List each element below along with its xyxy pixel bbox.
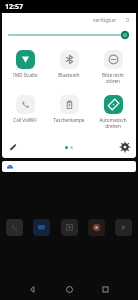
- staticText: verfügbar: [93, 17, 117, 24]
- button[interactable]: App: [33, 219, 50, 236]
- staticText: Bitte nicht stören: [92, 72, 134, 84]
- staticText: 0: [126, 17, 129, 24]
- button[interactable]: Bearbeiten: [7, 141, 19, 153]
- staticText: 1MD Studio: [4, 72, 46, 78]
- button[interactable]: App: [6, 219, 23, 236]
- button[interactable]: App: [88, 219, 105, 236]
- staticText: Call VoWiFi: [4, 117, 46, 123]
- button[interactable]: 1MD Studio: [4, 49, 46, 79]
- staticText: Taschenlampe: [48, 117, 90, 123]
- button[interactable]: Übersicht: [101, 285, 110, 294]
- button[interactable]: Call VoWiFi: [4, 94, 46, 124]
- staticText: 12:57: [5, 2, 23, 12]
- button[interactable]: App: [61, 219, 78, 236]
- button[interactable]: Einstellungen: [119, 141, 131, 153]
- button[interactable]: App: [115, 219, 132, 236]
- staticText: Bluetooth: [48, 72, 90, 78]
- staticText: Automatisch drehen: [92, 117, 134, 129]
- button[interactable]: Zurück: [28, 285, 37, 294]
- button[interactable]: Startbildschirm: [65, 285, 74, 294]
- button[interactable]: Bluetooth: [48, 49, 90, 79]
- button[interactable]: Automatisch drehen: [92, 94, 134, 130]
- button[interactable]: Bitte nicht stören: [92, 49, 134, 85]
- button[interactable]: Taschenlampe: [48, 94, 90, 124]
- button[interactable]: [9, 31, 129, 39]
- button[interactable]: [2, 161, 136, 172]
